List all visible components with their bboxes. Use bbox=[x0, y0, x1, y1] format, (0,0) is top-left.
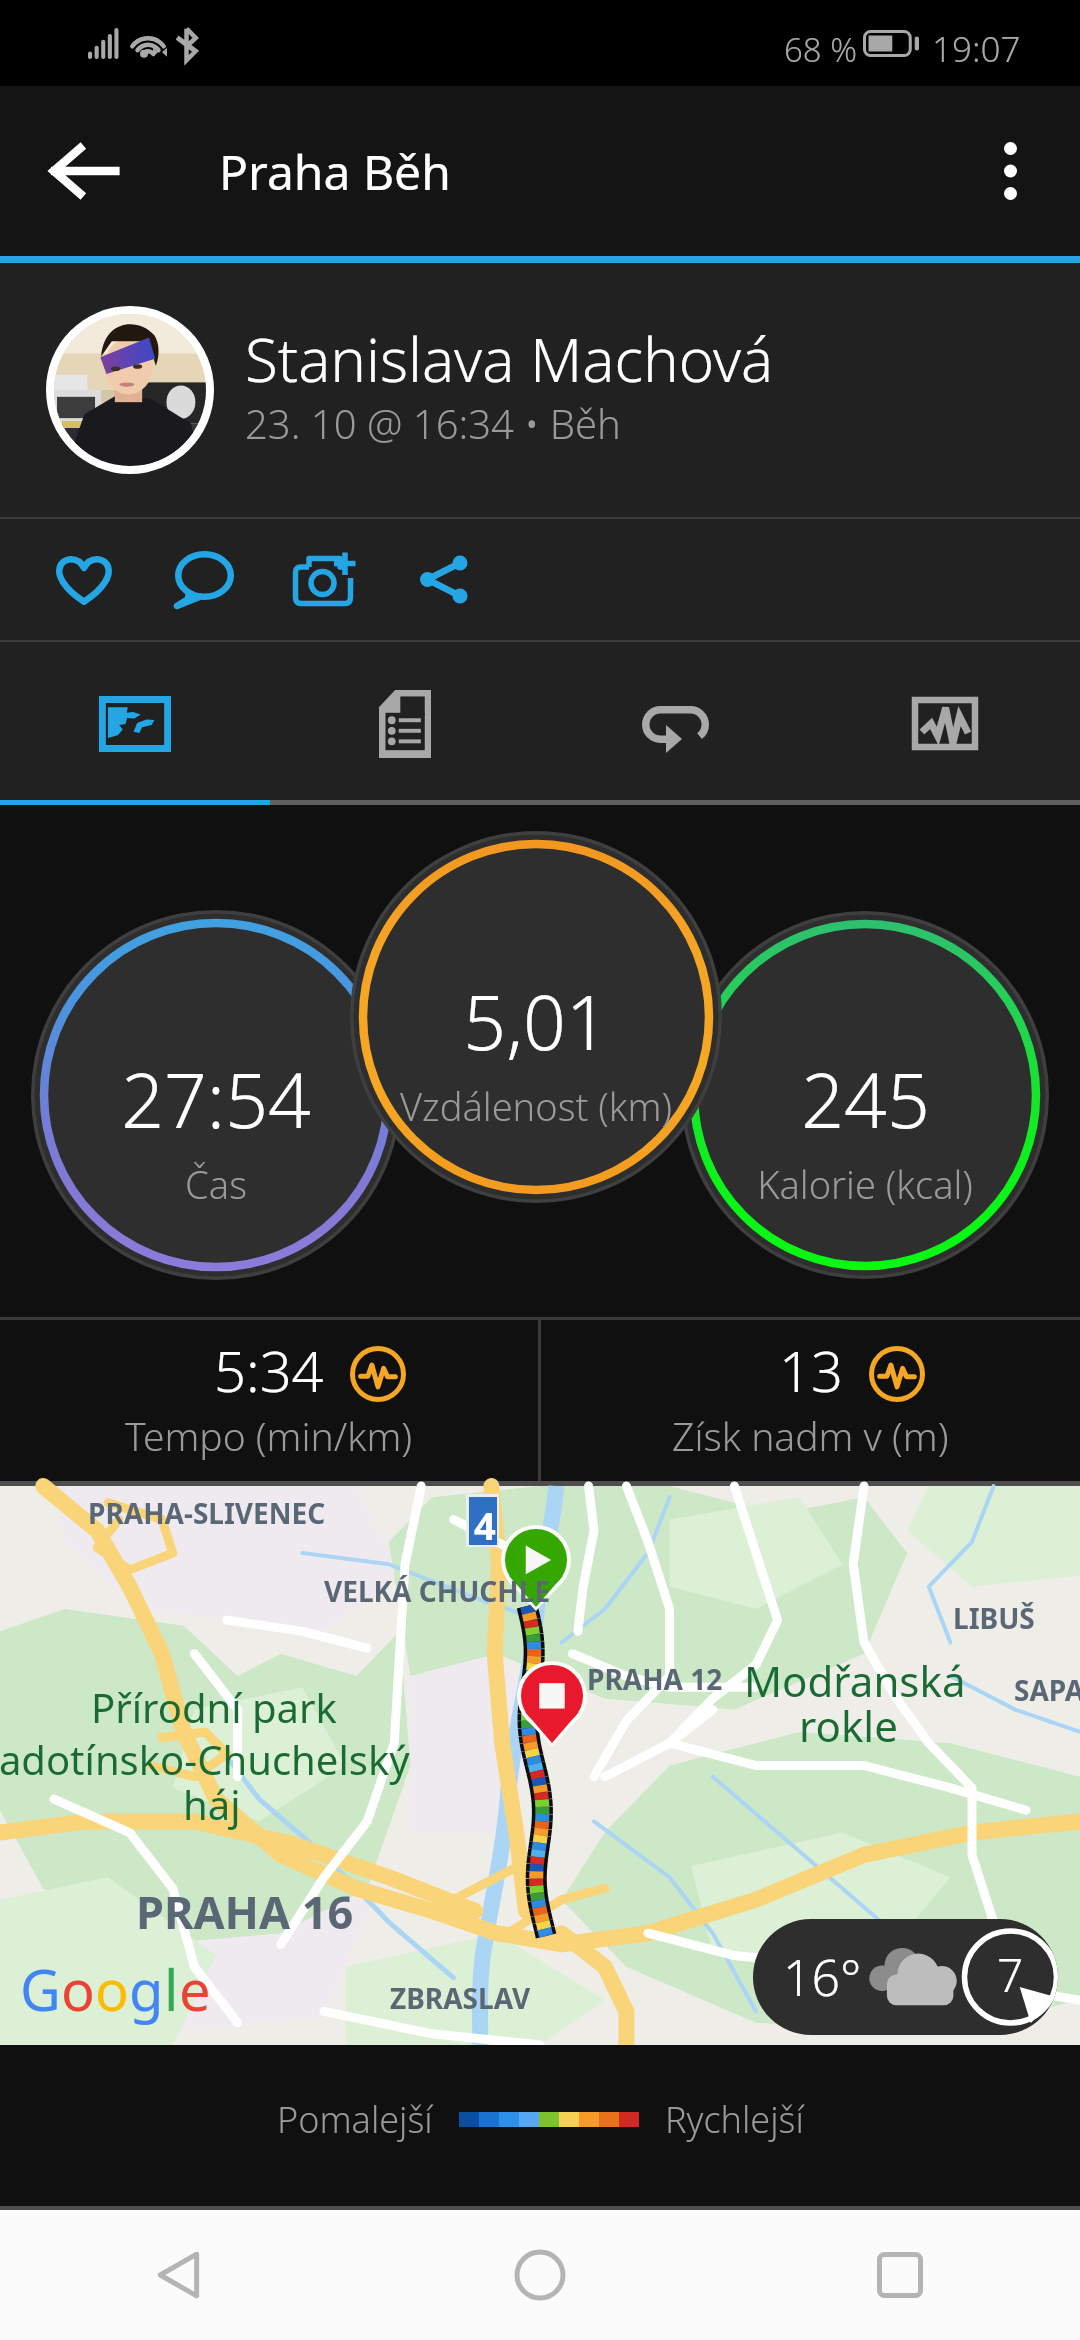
staticText: Získ nadm v (m) bbox=[672, 1409, 949, 1462]
button[interactable]: Add photo bbox=[264, 519, 384, 640]
staticText: 68 % bbox=[784, 27, 858, 72]
staticText: Modřanská bbox=[744, 1652, 966, 1709]
button[interactable]: 5:34 bbox=[0, 1320, 538, 1481]
staticText: G bbox=[20, 1951, 61, 2027]
staticText: Praha Běh bbox=[219, 139, 451, 204]
staticText: g bbox=[129, 1951, 164, 2027]
staticText: Radotínsko-Chuchelský bbox=[0, 1732, 410, 1786]
staticText: Přírodní park bbox=[91, 1680, 337, 1734]
button[interactable]: Comment bbox=[144, 519, 264, 640]
staticText: 13 bbox=[779, 1332, 843, 1408]
staticText: rokle bbox=[799, 1697, 898, 1754]
button[interactable]: Weather bbox=[753, 1919, 1058, 2035]
staticText: 5,01 bbox=[463, 970, 609, 1072]
staticText: PRAHA 12 bbox=[587, 1660, 723, 1698]
button[interactable]: Map tab bbox=[0, 642, 270, 805]
staticText: 245 bbox=[801, 1048, 930, 1150]
staticText: Tempo (min/km) bbox=[125, 1409, 413, 1462]
button[interactable]: Details tab bbox=[270, 642, 540, 805]
staticText: 7 bbox=[997, 1943, 1024, 2006]
button[interactable]: Like bbox=[24, 519, 144, 640]
button[interactable]: Back bbox=[28, 115, 140, 227]
staticText: PRAHA 16 bbox=[136, 1881, 354, 1942]
staticText: Stanislava Machová bbox=[245, 318, 774, 400]
staticText: Rychlejší bbox=[665, 2095, 804, 2144]
staticText: 23. 10 @ 16:34 • Běh bbox=[245, 396, 621, 450]
staticText: háj bbox=[183, 1777, 241, 1831]
button[interactable]: Charts tab bbox=[810, 642, 1080, 805]
staticText: 5:34 bbox=[214, 1332, 324, 1408]
button[interactable]: Back bbox=[0, 2210, 360, 2340]
staticText: Kalorie (kcal) bbox=[757, 1158, 973, 1210]
staticText: 27:54 bbox=[121, 1048, 311, 1150]
staticText: SAPA bbox=[1014, 1671, 1080, 1709]
staticText: ZBRASLAV bbox=[390, 1979, 531, 2017]
button[interactable]: Recents bbox=[720, 2210, 1080, 2340]
staticText: o bbox=[95, 1951, 129, 2027]
staticText: 19:07 bbox=[932, 25, 1021, 73]
staticText: l bbox=[164, 1951, 179, 2027]
staticText: PRAHA-SLIVENEC bbox=[88, 1494, 326, 1532]
staticText: 16° bbox=[783, 1943, 862, 2011]
staticText: Čas bbox=[185, 1158, 247, 1210]
button[interactable]: Share bbox=[384, 519, 504, 640]
button[interactable]: Home bbox=[360, 2210, 720, 2340]
button[interactable]: Stanislava Machová bbox=[0, 263, 1080, 517]
staticText: Pomalejší bbox=[277, 2095, 433, 2144]
staticText: o bbox=[61, 1951, 95, 2027]
button[interactable]: 13 bbox=[541, 1320, 1080, 1481]
staticText: e bbox=[179, 1951, 211, 2027]
staticText: VELKÁ CHUCHLE bbox=[324, 1572, 551, 1610]
staticText: Vzdálenost (km) bbox=[400, 1080, 672, 1132]
button[interactable]: Laps tab bbox=[540, 642, 810, 805]
staticText: LIBUŠ bbox=[953, 1599, 1035, 1637]
button[interactable]: More options bbox=[958, 119, 1062, 223]
button[interactable]: PRAHA-SLIVENEC bbox=[0, 1486, 1080, 2045]
staticText: 4 bbox=[474, 1499, 496, 1551]
